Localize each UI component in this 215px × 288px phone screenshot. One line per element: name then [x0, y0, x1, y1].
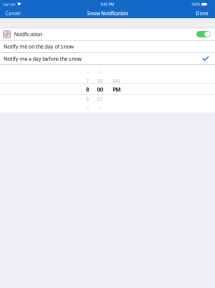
- staticText: 02: [98, 105, 102, 110]
- staticText: AM: [113, 78, 120, 84]
- staticText: Notification: [14, 31, 42, 38]
- staticText: 6: [87, 69, 89, 75]
- staticText: Cancel: [5, 10, 20, 17]
- staticText: PM: [113, 86, 121, 93]
- staticText: Carrier: [3, 2, 16, 7]
- button[interactable]: Notify me on the day of snow: [0, 41, 215, 52]
- staticText: 01: [97, 96, 103, 102]
- staticText: 10: [85, 105, 89, 110]
- staticText: 58: [98, 69, 102, 75]
- staticText: Notify me a day before the snow: [3, 55, 81, 62]
- staticText: 8: [86, 86, 89, 93]
- staticText: 9:41 PM: [100, 2, 114, 7]
- staticText: Done: [195, 10, 208, 17]
- staticText: 9: [86, 96, 89, 102]
- button[interactable]: Cancel: [0, 8, 25, 18]
- button[interactable]: Notify me a day before the snow: [0, 53, 215, 64]
- staticText: Snow Notification: [87, 10, 128, 17]
- staticText: 00: [97, 86, 103, 93]
- staticText: 7: [86, 78, 89, 84]
- staticText: Notify me on the day of snow: [3, 43, 73, 50]
- button[interactable]: Notification: [0, 28, 215, 40]
- button[interactable]: Done: [189, 8, 215, 18]
- staticText: 59: [97, 78, 103, 84]
- staticText: 100%: [191, 2, 200, 7]
